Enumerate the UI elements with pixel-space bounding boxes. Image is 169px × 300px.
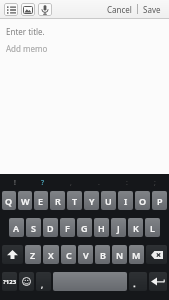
staticText: O: [139, 195, 147, 207]
staticText: P: [157, 195, 163, 207]
staticText: K: [133, 222, 139, 234]
staticText: X: [48, 249, 54, 261]
staticText: I: [124, 195, 128, 207]
staticText: Save: [143, 4, 161, 15]
button[interactable]: [146, 245, 167, 264]
staticText: !: [14, 178, 16, 188]
button[interactable]: N: [112, 245, 127, 264]
button[interactable]: F: [60, 218, 75, 237]
button[interactable]: Cancel: [102, 0, 137, 18]
button[interactable]: [149, 272, 167, 291]
staticText: B: [100, 249, 106, 261]
staticText: R: [55, 195, 61, 207]
staticText: .: [98, 178, 100, 188]
staticText: ?123: [3, 278, 17, 286]
staticText: ,: [70, 178, 72, 188]
staticText: T: [72, 195, 78, 207]
button[interactable]: [129, 272, 147, 291]
staticText: D: [47, 222, 54, 234]
button[interactable]: T: [67, 191, 82, 210]
button[interactable]: [21, 3, 35, 16]
button[interactable]: A: [9, 218, 24, 237]
staticText: S: [31, 222, 36, 234]
staticText: Q: [5, 195, 13, 207]
button[interactable]: !: [0, 174, 29, 191]
button[interactable]: ,: [36, 272, 51, 291]
button[interactable]: [38, 3, 52, 16]
staticText: N: [116, 249, 124, 261]
button[interactable]: ?: [29, 174, 57, 191]
button[interactable]: L: [145, 218, 160, 237]
button[interactable]: G: [77, 218, 92, 237]
staticText: ?: [41, 178, 45, 188]
staticText: G: [81, 222, 88, 234]
button[interactable]: P: [152, 191, 167, 210]
button[interactable]: [4, 3, 18, 16]
button[interactable]: [2, 245, 23, 264]
staticText: J: [117, 222, 120, 234]
button[interactable]: [19, 272, 34, 291]
staticText: W: [21, 195, 30, 207]
staticText: L: [150, 222, 155, 234]
staticText: V: [83, 249, 89, 261]
button[interactable]: Y: [84, 191, 99, 210]
button[interactable]: ?123: [2, 272, 17, 291]
button[interactable]: V: [78, 245, 93, 264]
staticText: :: [126, 178, 128, 188]
staticText: Cancel: [107, 4, 132, 15]
button[interactable]: Z: [25, 245, 41, 264]
button[interactable]: Q: [2, 191, 16, 210]
staticText: Y: [89, 195, 95, 207]
button[interactable]: W: [18, 191, 32, 210]
button[interactable]: S: [26, 218, 41, 237]
button[interactable]: J: [111, 218, 126, 237]
staticText: H: [98, 222, 105, 234]
button[interactable]: R: [50, 191, 65, 210]
button[interactable]: [53, 272, 127, 291]
button[interactable]: E: [34, 191, 48, 210]
button[interactable]: U: [101, 191, 116, 210]
staticText: M: [132, 249, 141, 261]
button[interactable]: H: [94, 218, 109, 237]
staticText: E: [38, 195, 44, 207]
button[interactable]: X: [43, 245, 59, 264]
staticText: Add memo: [6, 43, 48, 54]
button[interactable]: C: [61, 245, 76, 264]
button[interactable]: B: [95, 245, 110, 264]
staticText: F: [65, 222, 70, 234]
button[interactable]: O: [135, 191, 150, 210]
staticText: Z: [30, 249, 36, 261]
button[interactable]: Save: [138, 0, 166, 18]
button[interactable]: K: [128, 218, 143, 237]
staticText: A: [13, 222, 20, 234]
staticText: U: [105, 195, 112, 207]
button[interactable]: I: [118, 191, 133, 210]
staticText: ,: [41, 279, 44, 290]
staticText: ;: [154, 178, 156, 188]
button[interactable]: M: [129, 245, 144, 264]
staticText: C: [66, 249, 72, 261]
button[interactable]: D: [43, 218, 58, 237]
staticText: Enter title.: [6, 26, 45, 37]
